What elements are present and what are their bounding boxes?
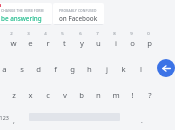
button[interactable]: Enter — [157, 59, 175, 77]
staticText: i — [115, 38, 117, 48]
staticText: u — [96, 38, 101, 48]
button[interactable]: f — [47, 60, 64, 78]
staticText: r — [46, 38, 50, 48]
staticText: ! — [131, 90, 134, 100]
button[interactable]: h — [81, 60, 98, 78]
button[interactable]: b — [73, 86, 90, 104]
staticText: v — [63, 90, 67, 100]
staticText: f — [54, 64, 57, 74]
button[interactable]: . — [133, 111, 150, 129]
staticText: 2 — [10, 30, 13, 36]
staticText: be answering — [1, 14, 42, 23]
button[interactable]: e — [22, 34, 39, 52]
staticText: 5 — [61, 30, 64, 36]
button[interactable]: s — [13, 60, 30, 78]
staticText: m — [112, 90, 120, 100]
button[interactable]: PROBABLY CONFUSED WORD — [53, 3, 104, 25]
button[interactable]: ! — [124, 86, 141, 104]
button[interactable]: n — [90, 86, 107, 104]
staticText: 3 — [27, 30, 30, 36]
staticText: d — [36, 64, 41, 74]
staticText: t — [63, 38, 66, 48]
staticText: on Facebook — [59, 14, 98, 23]
staticText: 7 — [96, 30, 99, 36]
staticText: n — [96, 90, 101, 100]
staticText: w — [10, 38, 17, 48]
button[interactable]: w — [5, 34, 22, 52]
staticText: h — [87, 64, 92, 74]
button[interactable]: k — [115, 60, 132, 78]
staticText: ? — [148, 90, 152, 100]
staticText: PROBABLY CONFUSED WORD — [59, 8, 101, 12]
staticText: , — [13, 116, 15, 125]
button[interactable]: i — [107, 34, 124, 52]
staticText: x — [28, 90, 33, 100]
button[interactable]: o — [124, 34, 141, 52]
staticText: c — [46, 90, 50, 100]
staticText: k — [121, 64, 126, 74]
button[interactable]: a — [0, 60, 13, 78]
staticText: 4 — [44, 30, 47, 36]
staticText: a — [2, 64, 7, 74]
button[interactable]: x — [22, 86, 39, 104]
button[interactable]: v — [56, 86, 73, 104]
staticText: y — [80, 38, 84, 48]
button[interactable]: d — [30, 60, 47, 78]
button[interactable]: m — [107, 86, 124, 104]
button[interactable]: z — [5, 86, 22, 104]
button[interactable]: l — [132, 60, 149, 78]
button[interactable]: , — [5, 111, 22, 129]
staticText: 9 — [130, 30, 133, 36]
staticText: s — [20, 64, 24, 74]
staticText: e — [28, 38, 33, 48]
button[interactable]: ?123 — [0, 111, 14, 124]
staticText: g — [70, 64, 75, 74]
staticText: 0 — [147, 30, 150, 36]
button[interactable]: y — [73, 34, 90, 52]
staticText: b — [79, 90, 84, 100]
staticText: 8 — [113, 30, 116, 36]
button[interactable]: r — [39, 34, 56, 52]
staticText: 6 — [79, 30, 82, 36]
button[interactable]: g — [64, 60, 81, 78]
staticText: o — [130, 38, 135, 48]
staticText: p — [147, 38, 152, 48]
button[interactable]: j — [98, 60, 115, 78]
button[interactable]: t — [56, 34, 73, 52]
staticText: CHANGE THE VERB FORM — [1, 8, 44, 12]
button[interactable]: CHANGE THE VERB FORM — [0, 3, 52, 25]
staticText: j — [106, 64, 108, 74]
button[interactable]: p — [141, 34, 158, 52]
staticText: ?123 — [0, 114, 9, 121]
staticText: z — [12, 90, 16, 100]
staticText: . — [141, 116, 143, 125]
button[interactable]: ? — [141, 86, 158, 104]
button[interactable]: u — [90, 34, 107, 52]
button[interactable]: c — [39, 86, 56, 104]
staticText: l — [140, 64, 142, 74]
